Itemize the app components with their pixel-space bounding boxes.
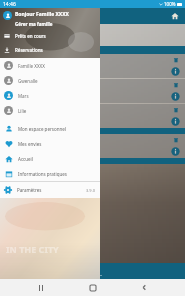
button[interactable]: Mon espace personnel (0, 121, 100, 136)
button[interactable]: Prêts en cours (0, 31, 100, 41)
button[interactable]: Delete (0, 79, 185, 103)
staticText: Famille XXXX (18, 63, 45, 69)
staticText: Lilie (18, 108, 27, 114)
staticText: Accueil (18, 156, 33, 162)
staticText: 100% (164, 1, 176, 7)
button[interactable]: Informations pratiques (0, 166, 100, 181)
button[interactable]: Delete (171, 135, 180, 144)
button[interactable]: Gwenalle (0, 73, 100, 88)
staticText: Mes envies (18, 141, 42, 147)
button[interactable]: Famille XXXX (0, 58, 100, 73)
staticText: Bonjour Famille XXXX (15, 11, 69, 18)
button[interactable]: Delete (171, 105, 180, 114)
button[interactable]: Accueil (0, 151, 100, 166)
button[interactable]: Delete (171, 80, 180, 89)
button[interactable]: pratique pour consulter son cheval (0, 54, 185, 78)
button[interactable]: Profile (73, 266, 113, 276)
button[interactable]: Information (170, 66, 181, 77)
button[interactable]: Mars (0, 88, 100, 103)
staticText: 3.9.0 (86, 188, 96, 193)
staticText: ATIONS (6, 30, 31, 40)
staticText: Gérer ma famille (15, 21, 53, 27)
button[interactable]: Bonjour Famille XXXX (3, 11, 100, 27)
staticText: Paramètres (17, 187, 86, 193)
button[interactable]: Lilie (0, 103, 100, 118)
button[interactable]: Delete (0, 104, 185, 128)
button[interactable]: Réservations (0, 45, 100, 55)
button[interactable]: Delete (171, 55, 180, 64)
button[interactable]: Mes envies (0, 136, 100, 151)
button[interactable]: Back (134, 279, 154, 296)
staticText: Réservations (15, 47, 43, 53)
button[interactable]: Recent apps (31, 279, 51, 296)
button[interactable]: Information (170, 146, 181, 157)
staticText: Informations pratiques (18, 171, 67, 177)
button[interactable]: Information (170, 116, 181, 127)
staticText: pratique pour consulter son cheval (4, 63, 170, 69)
staticText: IN THE CITY (6, 243, 59, 255)
button[interactable]: Home (83, 279, 103, 296)
button[interactable]: Delete (0, 134, 185, 158)
button[interactable]: Paramètres (0, 182, 100, 198)
button[interactable]: Information (170, 91, 181, 102)
staticText: Prêts en cours (15, 33, 46, 39)
staticText: 14:46 (3, 1, 16, 8)
staticText: Mars (18, 93, 29, 99)
staticText: Mon espace personnel (18, 126, 66, 132)
button[interactable]: Home (169, 10, 181, 22)
staticText: Gwenalle (18, 78, 38, 84)
